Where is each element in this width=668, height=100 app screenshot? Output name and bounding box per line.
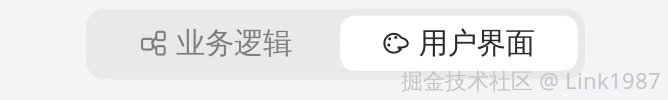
button[interactable]: 业务逻辑 [93, 15, 340, 71]
staticText: 用户界面 [419, 25, 535, 61]
button[interactable]: 用户界面 [340, 15, 578, 71]
staticText: 掘金技术社区 @ Link1987 [401, 65, 661, 95]
staticText: 业务逻辑 [176, 25, 292, 61]
